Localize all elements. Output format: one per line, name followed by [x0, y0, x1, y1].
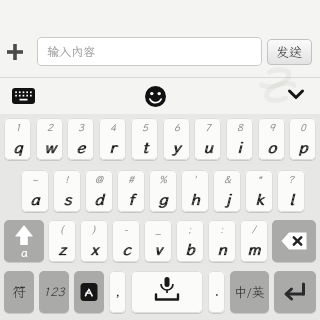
staticText: 1	[15, 121, 21, 134]
staticText: h	[191, 188, 201, 209]
button[interactable]: 123	[39, 271, 69, 313]
staticText: c	[123, 238, 132, 259]
button[interactable]: '	[181, 170, 209, 212]
button[interactable]: ;	[176, 220, 204, 262]
button[interactable]: #	[117, 170, 145, 212]
button[interactable]: ~	[21, 170, 49, 212]
button[interactable]: ?	[277, 170, 305, 212]
staticText: q	[14, 136, 24, 157]
button[interactable]: 符	[4, 271, 34, 313]
staticText: 8	[237, 121, 243, 134]
button[interactable]: )	[80, 220, 108, 262]
staticText: h	[190, 188, 200, 209]
staticText: (	[60, 223, 64, 236]
staticText: y	[173, 136, 182, 157]
button[interactable]: _	[144, 220, 172, 262]
staticText: k	[255, 188, 264, 209]
button[interactable]	[131, 271, 203, 313]
staticText: .	[214, 279, 220, 300]
staticText: %	[159, 173, 167, 186]
staticText: 发送	[276, 44, 303, 61]
staticText: !	[65, 173, 69, 186]
staticText: w	[44, 136, 56, 157]
staticText: z	[59, 238, 67, 259]
button[interactable]	[6, 43, 24, 61]
button[interactable]	[274, 271, 316, 313]
button[interactable]: !	[53, 170, 81, 212]
button[interactable]: 7	[194, 118, 221, 160]
staticText: 123	[43, 284, 65, 300]
staticText: w	[45, 136, 57, 157]
staticText: f	[129, 188, 135, 209]
button[interactable]: /	[240, 220, 268, 262]
staticText: :	[220, 223, 224, 236]
button[interactable]: *	[245, 170, 273, 212]
staticText: q	[13, 136, 23, 157]
button[interactable]: 5	[131, 118, 158, 160]
button[interactable]: 中/英	[230, 271, 269, 313]
staticText: o	[268, 136, 277, 157]
staticText: r	[109, 136, 116, 157]
button[interactable]: 1	[4, 118, 31, 160]
staticText: 4	[110, 121, 116, 134]
button[interactable]: 2	[36, 118, 63, 160]
button[interactable]: %	[149, 170, 177, 212]
button[interactable]	[288, 89, 304, 101]
staticText: _	[156, 223, 161, 236]
staticText: 输入内容	[47, 44, 96, 60]
button[interactable]: 6	[163, 118, 190, 160]
staticText: A	[85, 285, 93, 299]
staticText: x	[90, 238, 99, 259]
staticText: -	[124, 223, 128, 236]
staticText: 5	[142, 121, 148, 134]
button[interactable]: A	[74, 271, 104, 313]
button[interactable]: 输入内容	[37, 37, 262, 66]
staticText: /	[252, 223, 256, 236]
button[interactable]: .	[208, 271, 225, 313]
staticText: p	[299, 136, 309, 157]
staticText: 7	[205, 121, 211, 134]
staticText: v	[155, 238, 163, 259]
staticText: s	[63, 188, 72, 209]
button[interactable]: 8	[226, 118, 253, 160]
button[interactable]	[12, 88, 35, 104]
staticText: m	[247, 238, 261, 259]
staticText: e	[77, 136, 86, 157]
staticText: u	[204, 136, 214, 157]
button[interactable]: (	[48, 220, 76, 262]
button[interactable]: ,	[109, 271, 126, 313]
staticText: 符	[12, 283, 26, 301]
staticText: b	[185, 238, 195, 259]
staticText: b	[186, 238, 196, 259]
staticText: x	[91, 238, 100, 259]
staticText: g	[159, 188, 169, 209]
staticText: o	[267, 136, 276, 157]
staticText: u	[203, 136, 213, 157]
staticText: 3	[78, 121, 84, 134]
button[interactable]: :	[208, 220, 236, 262]
staticText: f	[128, 188, 134, 209]
staticText: 中/英	[234, 284, 265, 301]
staticText: ~	[32, 173, 38, 186]
button[interactable]: &	[213, 170, 241, 212]
button[interactable]: 3	[67, 118, 94, 160]
staticText: ;	[188, 223, 192, 236]
button[interactable]	[145, 86, 166, 107]
staticText: g	[158, 188, 168, 209]
button[interactable]: 发送	[267, 39, 312, 65]
staticText: k	[256, 188, 265, 209]
button[interactable]: @	[85, 170, 113, 212]
button[interactable]: 4	[99, 118, 126, 160]
button[interactable]: 9	[258, 118, 285, 160]
button[interactable]: 0	[289, 118, 316, 160]
button[interactable]	[272, 220, 316, 262]
staticText: s	[64, 188, 73, 209]
button[interactable]: -	[112, 220, 140, 262]
button[interactable]: a	[4, 220, 44, 262]
staticText: 0	[300, 121, 306, 134]
staticText: d	[95, 188, 105, 209]
staticText: ,	[115, 279, 121, 300]
staticText: t	[142, 136, 148, 157]
staticText: c	[122, 238, 131, 259]
staticText: @	[95, 173, 103, 186]
